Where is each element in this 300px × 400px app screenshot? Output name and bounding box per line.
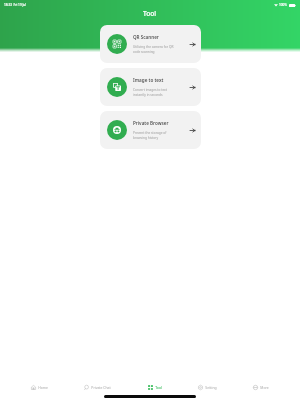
staticText: Private Browser (133, 120, 169, 126)
button[interactable]: Image to text (100, 68, 201, 106)
button[interactable]: QR Scanner (100, 25, 201, 63)
other: Image to text (190, 85, 195, 90)
staticText: QR Scanner (133, 34, 159, 40)
staticText: Tool (155, 385, 162, 390)
staticText: 18:33 Fri 19 Jul (4, 3, 27, 7)
other: QR Scanner (190, 42, 195, 47)
button[interactable]: Private Chat (84, 383, 111, 392)
staticText: 100% (279, 3, 287, 7)
button[interactable]: Setting (198, 383, 217, 392)
other: Private Browser (190, 128, 195, 133)
button[interactable]: More (253, 383, 269, 392)
button[interactable]: Home (31, 383, 48, 392)
staticText: Image to text (133, 77, 164, 83)
staticText: More (260, 385, 269, 390)
button[interactable]: Private Browser (100, 111, 201, 149)
staticText: Setting (205, 385, 217, 390)
button[interactable]: Tool (148, 383, 162, 392)
staticText: Tool (143, 9, 157, 18)
staticText: Convert images to text instantly in seco… (133, 88, 167, 97)
staticText: Private Chat (91, 385, 111, 390)
staticText: Utilizing the camera for QR code scannin… (133, 45, 174, 54)
staticText: Home (38, 385, 48, 390)
staticText: Prevent the storage of browsing history (133, 131, 167, 140)
